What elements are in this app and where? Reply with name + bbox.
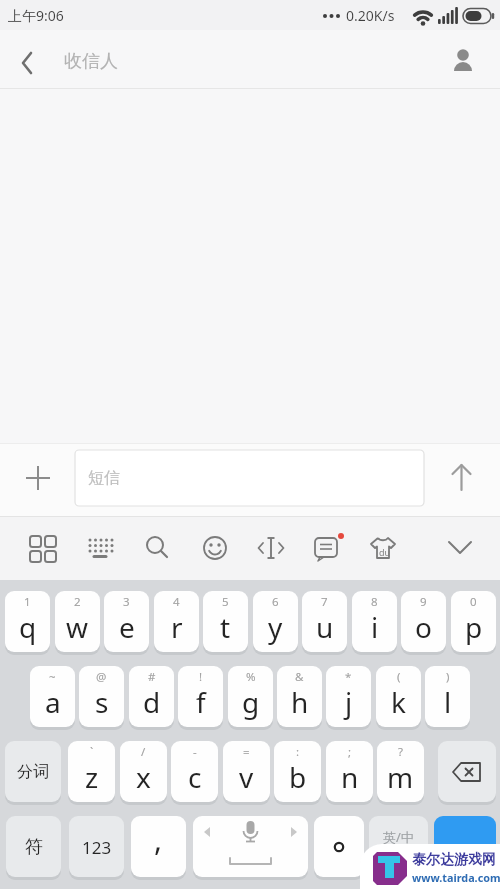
- button[interactable]: 4: [154, 591, 199, 653]
- button[interactable]: [446, 42, 482, 78]
- staticText: 符: [25, 836, 43, 859]
- button[interactable]: 3: [104, 591, 149, 653]
- staticText: ,: [154, 819, 163, 860]
- button[interactable]: /: [120, 741, 167, 803]
- button[interactable]: [445, 461, 478, 494]
- button[interactable]: 1: [5, 591, 50, 653]
- staticText: &: [295, 669, 304, 685]
- staticText: l: [444, 683, 452, 721]
- button[interactable]: [23, 529, 63, 569]
- staticText: 0.20K/s: [346, 6, 395, 25]
- staticText: 2: [74, 594, 81, 610]
- button[interactable]: :: [274, 741, 321, 803]
- button[interactable]: [193, 816, 308, 878]
- button[interactable]: [138, 528, 178, 568]
- staticText: ~: [49, 669, 56, 685]
- staticText: 上午9:06: [8, 6, 64, 25]
- staticText: 3: [123, 594, 130, 610]
- button[interactable]: -: [171, 741, 218, 803]
- staticText: -: [193, 744, 197, 760]
- button[interactable]: ): [425, 666, 470, 728]
- button[interactable]: 0: [451, 591, 496, 653]
- staticText: r: [171, 608, 183, 646]
- staticText: /: [141, 744, 146, 760]
- staticText: h: [291, 683, 309, 721]
- staticText: 123: [82, 836, 112, 859]
- button[interactable]: 分词: [5, 741, 61, 803]
- button[interactable]: &: [277, 666, 322, 728]
- staticText: =: [243, 744, 250, 760]
- staticText: z: [85, 758, 99, 796]
- button[interactable]: `: [68, 741, 115, 803]
- staticText: @: [96, 669, 107, 685]
- staticText: g: [242, 683, 260, 721]
- staticText: 8: [371, 594, 378, 610]
- button[interactable]: 符: [6, 816, 61, 878]
- staticText: 5: [222, 594, 229, 610]
- staticText: b: [289, 758, 307, 796]
- staticText: ?: [398, 744, 403, 760]
- button[interactable]: ,: [131, 816, 186, 878]
- staticText: 7: [321, 594, 328, 610]
- staticText: 9: [420, 594, 427, 610]
- staticText: v: [239, 758, 254, 796]
- staticText: n: [341, 758, 359, 796]
- staticText: :: [296, 744, 300, 760]
- button[interactable]: 5: [203, 591, 248, 653]
- button[interactable]: [440, 530, 480, 566]
- staticText: j: [345, 683, 353, 721]
- staticText: 分词: [17, 762, 49, 782]
- staticText: 收信人: [64, 50, 118, 73]
- button[interactable]: *: [326, 666, 371, 728]
- button[interactable]: 7: [302, 591, 347, 653]
- staticText: u: [316, 608, 334, 646]
- staticText: q: [19, 608, 37, 646]
- button[interactable]: #: [129, 666, 174, 728]
- staticText: ;: [348, 744, 352, 760]
- staticText: 0: [470, 594, 477, 610]
- staticText: t: [220, 608, 231, 646]
- button[interactable]: ;: [326, 741, 373, 803]
- button[interactable]: =: [223, 741, 270, 803]
- staticText: o: [415, 608, 432, 646]
- staticText: !: [199, 669, 203, 685]
- staticText: #: [148, 669, 156, 685]
- button[interactable]: [81, 529, 121, 569]
- button[interactable]: [314, 816, 364, 878]
- button[interactable]: 2: [55, 591, 100, 653]
- button[interactable]: 6: [253, 591, 298, 653]
- staticText: 4: [173, 594, 180, 610]
- button[interactable]: @: [79, 666, 124, 728]
- button[interactable]: 英/中: [369, 816, 428, 878]
- staticText: c: [188, 758, 202, 796]
- staticText: e: [119, 608, 135, 646]
- staticText: w: [66, 608, 89, 646]
- staticText: p: [465, 608, 483, 646]
- staticText: `: [90, 744, 94, 760]
- button[interactable]: (: [376, 666, 421, 728]
- button[interactable]: ?: [377, 741, 424, 803]
- staticText: 1: [24, 594, 31, 610]
- staticText: 英/中: [383, 828, 414, 846]
- button[interactable]: [434, 816, 496, 878]
- button[interactable]: [197, 530, 237, 570]
- button[interactable]: [22, 462, 54, 494]
- button[interactable]: [308, 530, 348, 570]
- button[interactable]: 9: [401, 591, 446, 653]
- staticText: d: [143, 683, 161, 721]
- button[interactable]: [363, 530, 403, 570]
- staticText: f: [196, 683, 206, 721]
- staticText: x: [136, 758, 151, 796]
- button[interactable]: 8: [352, 591, 397, 653]
- button[interactable]: %: [228, 666, 273, 728]
- button[interactable]: [252, 530, 292, 570]
- staticText: a: [45, 683, 61, 721]
- staticText: www.tairda.com: [412, 870, 500, 885]
- button[interactable]: [438, 741, 496, 803]
- button[interactable]: 短信: [75, 450, 424, 506]
- staticText: m: [387, 758, 414, 796]
- button[interactable]: !: [178, 666, 223, 728]
- button[interactable]: [10, 45, 46, 81]
- button[interactable]: 123: [69, 816, 124, 878]
- button[interactable]: ~: [30, 666, 75, 728]
